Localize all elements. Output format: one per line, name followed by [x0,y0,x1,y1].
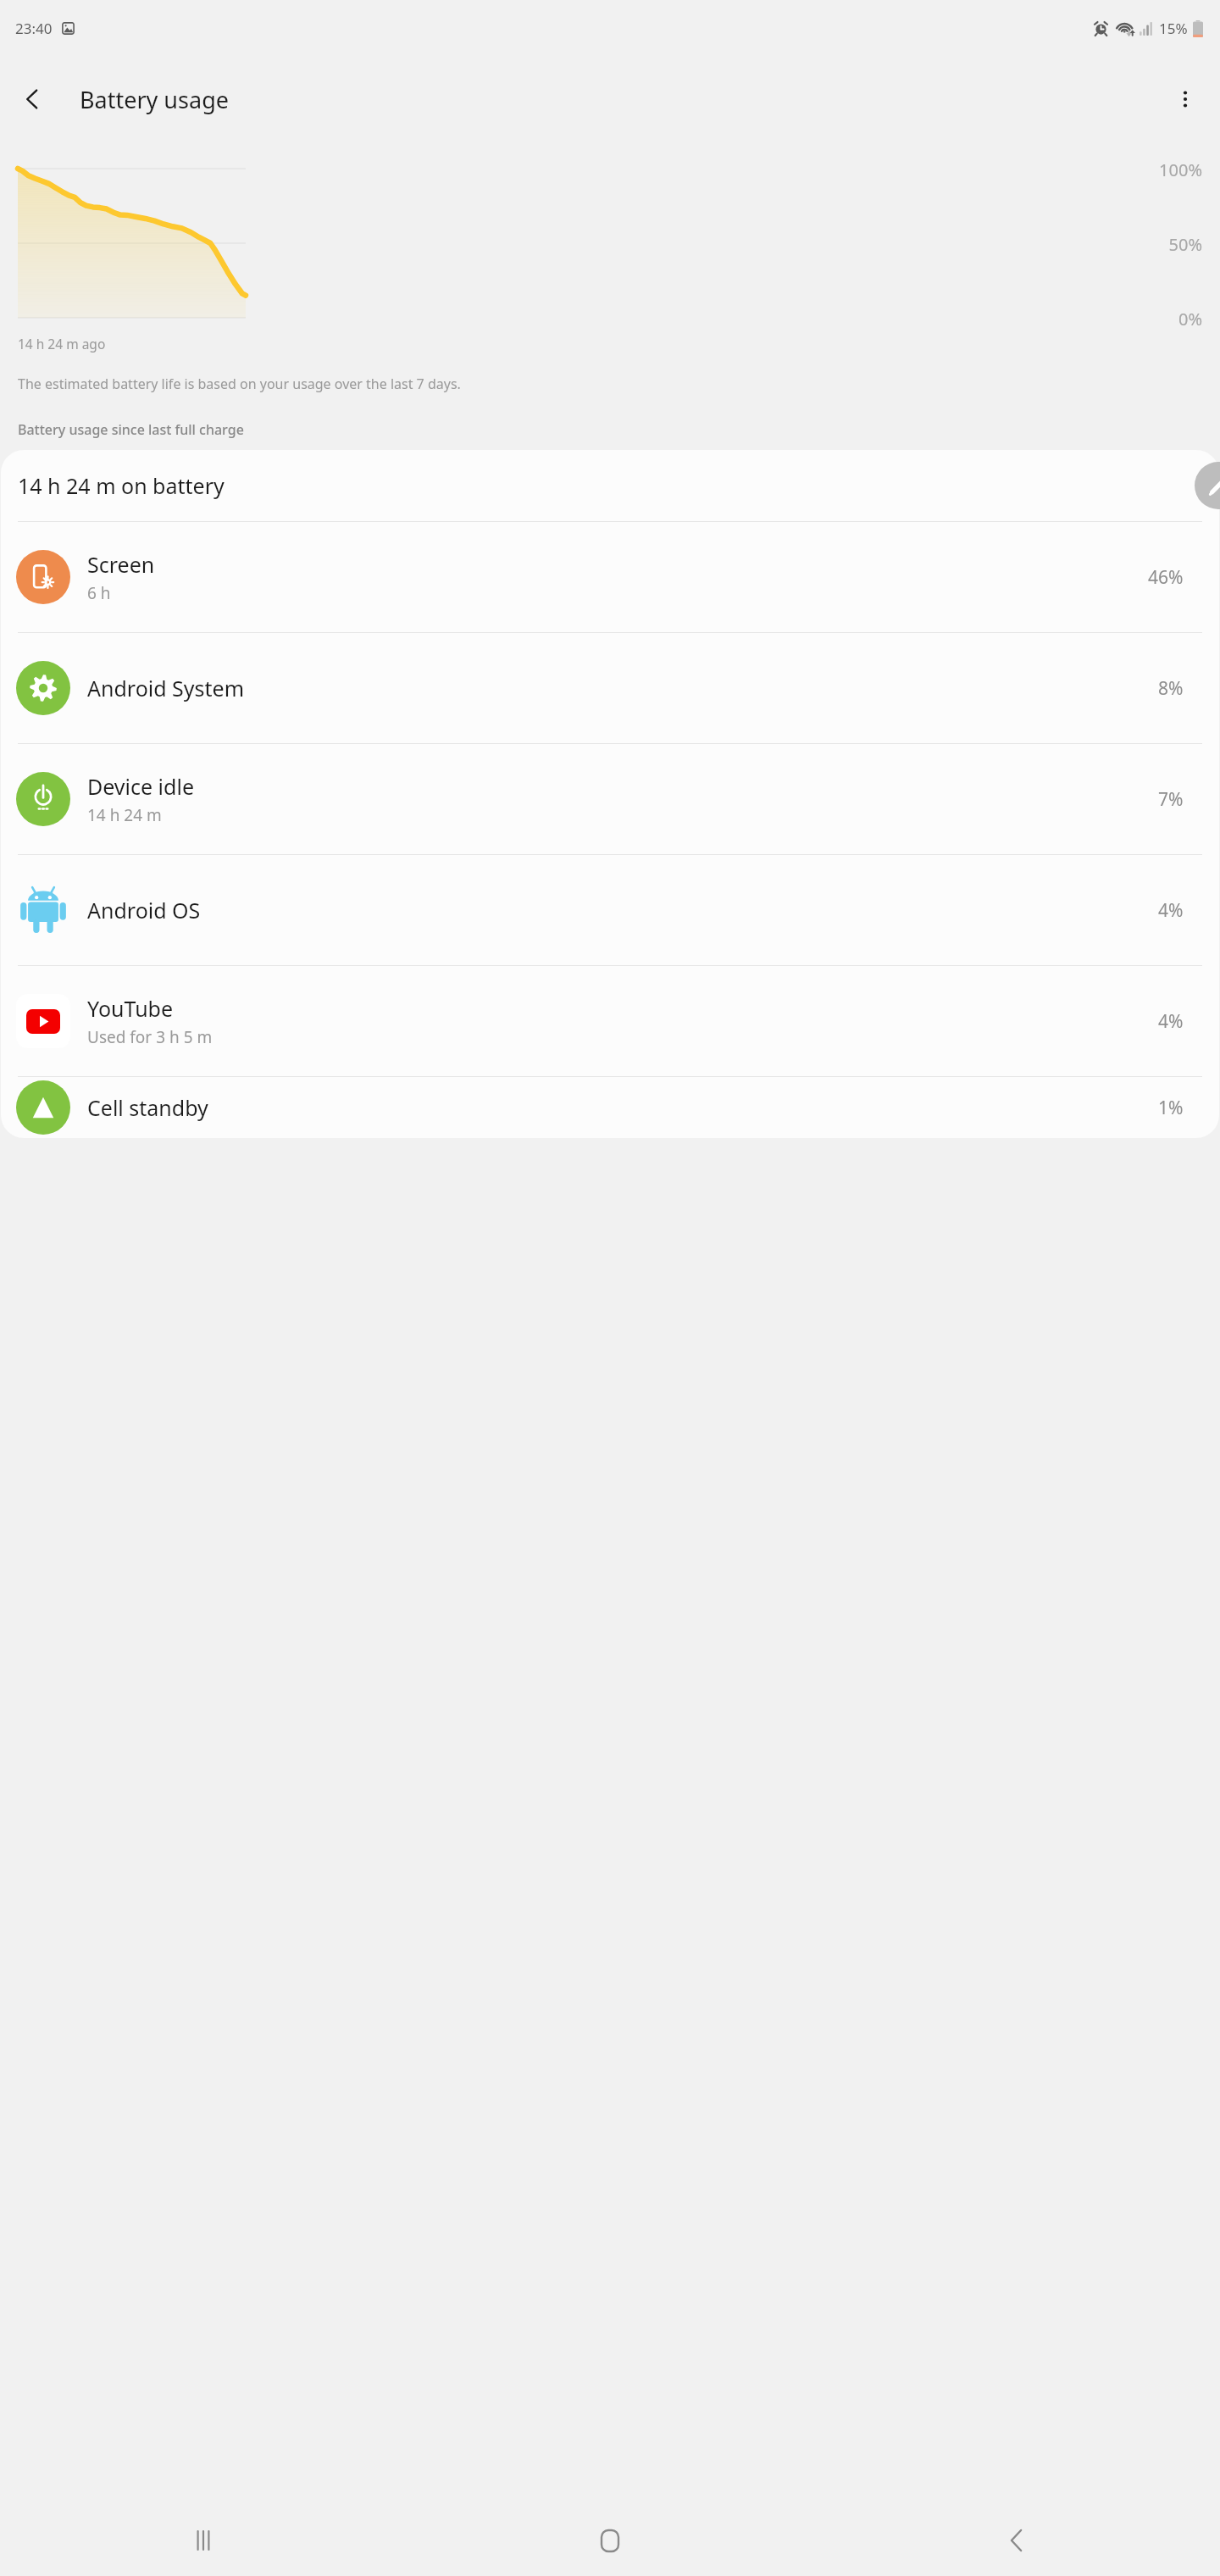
button[interactable]: Edit [1195,462,1220,509]
staticText: Screen [87,550,155,579]
button[interactable]: YouTube [1,966,1219,1076]
button[interactable]: More options [1159,73,1212,125]
staticText: The estimated battery life is based on y… [18,375,461,393]
button[interactable]: Android OS [1,855,1219,965]
staticText: 14 h 24 m on battery [18,471,225,500]
staticText: Device idle [87,772,194,801]
staticText: 8% [1158,676,1184,701]
button[interactable]: Cell standby [1,1077,1219,1138]
staticText: YouTube [87,994,174,1023]
staticText: 46% [1148,565,1184,590]
staticText: 100% [1159,158,1202,181]
button[interactable]: Screen [1,522,1219,632]
button[interactable]: Back [813,2505,1220,2576]
staticText: 4% [1158,1009,1184,1034]
staticText: 4% [1158,898,1184,923]
staticText: 0% [1178,308,1202,330]
staticText: 14 h 24 m ago [18,335,106,353]
staticText: Android OS [87,896,201,924]
button[interactable]: Device idle [1,744,1219,854]
staticText: 23:40 [15,19,53,38]
staticText: Battery usage [80,84,229,115]
staticText: 15% [1159,19,1188,38]
staticText: 1% [1158,1096,1184,1120]
staticText: Cell standby [87,1093,208,1122]
button[interactable]: Home [407,2505,813,2576]
button[interactable]: Back [7,73,59,125]
staticText: Battery usage since last full charge [18,420,244,439]
button[interactable]: Android System [1,633,1219,743]
staticText: 7% [1158,787,1184,812]
staticText: Used for 3 h 5 m [87,1026,213,1048]
staticText: 50% [1168,233,1202,256]
staticText: 14 h 24 m [87,804,162,826]
staticText: Android System [87,674,245,702]
button[interactable]: Recents [0,2505,407,2576]
staticText: 6 h [87,582,111,604]
